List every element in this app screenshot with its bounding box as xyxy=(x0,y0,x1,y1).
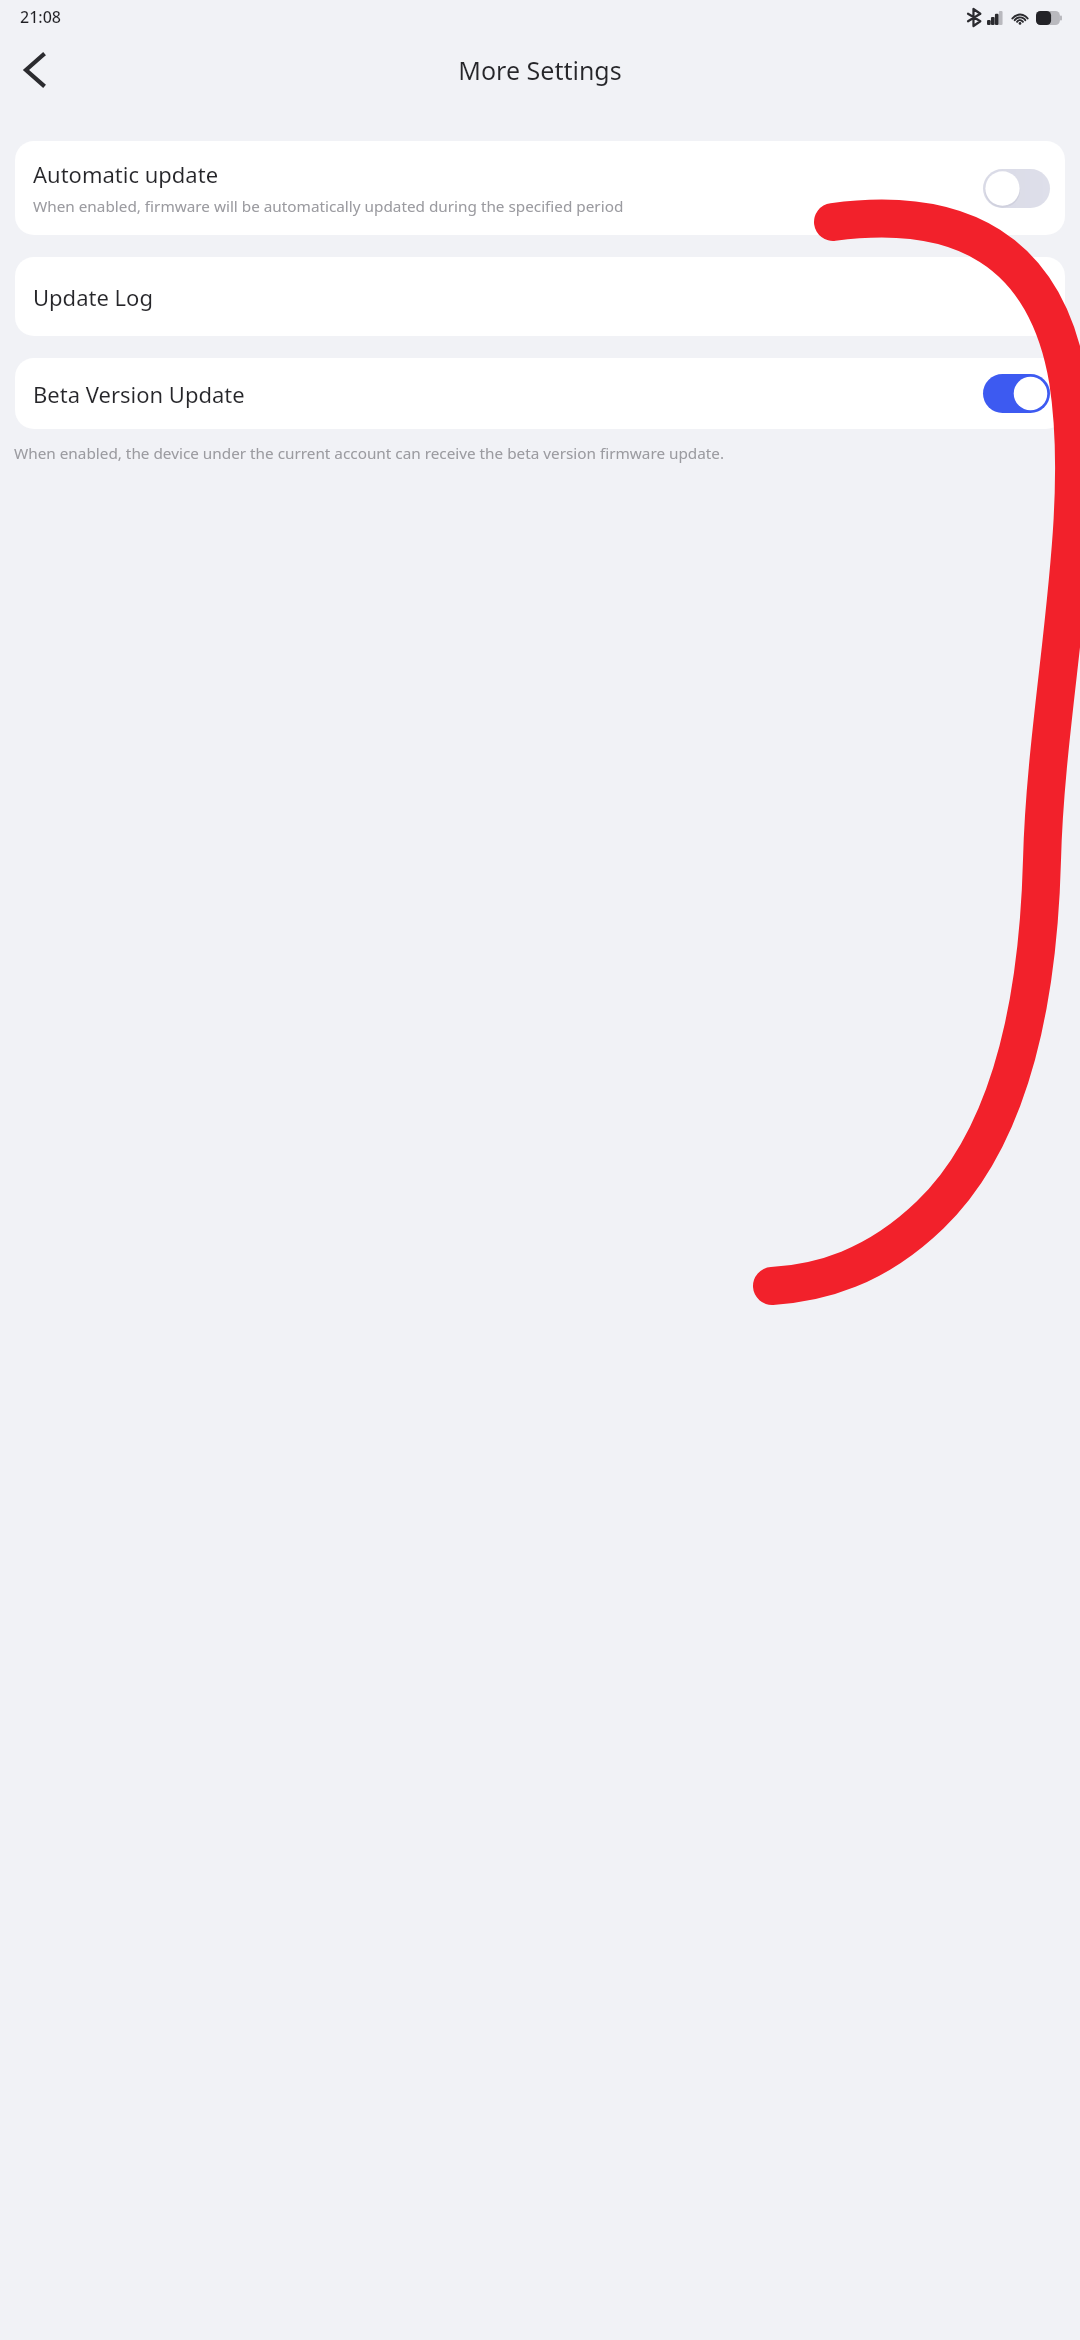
button[interactable]: Switch on xyxy=(983,374,1050,413)
button[interactable]: Beta Version Update xyxy=(15,358,1065,429)
staticText: Update Log xyxy=(33,282,1032,312)
staticText: More Settings xyxy=(458,53,622,87)
button[interactable]: Switch off xyxy=(983,169,1050,208)
staticText: Beta Version Update xyxy=(33,379,983,409)
staticText: 21:08 xyxy=(20,6,61,28)
button[interactable]: Update Log xyxy=(15,257,1065,336)
button[interactable]: Automatic update xyxy=(15,141,1065,235)
staticText: When enabled, the device under the curre… xyxy=(14,443,1050,464)
staticText: When enabled, firmware will be automatic… xyxy=(33,196,624,217)
staticText: Automatic update xyxy=(33,159,219,189)
button[interactable]: Back xyxy=(6,42,62,98)
